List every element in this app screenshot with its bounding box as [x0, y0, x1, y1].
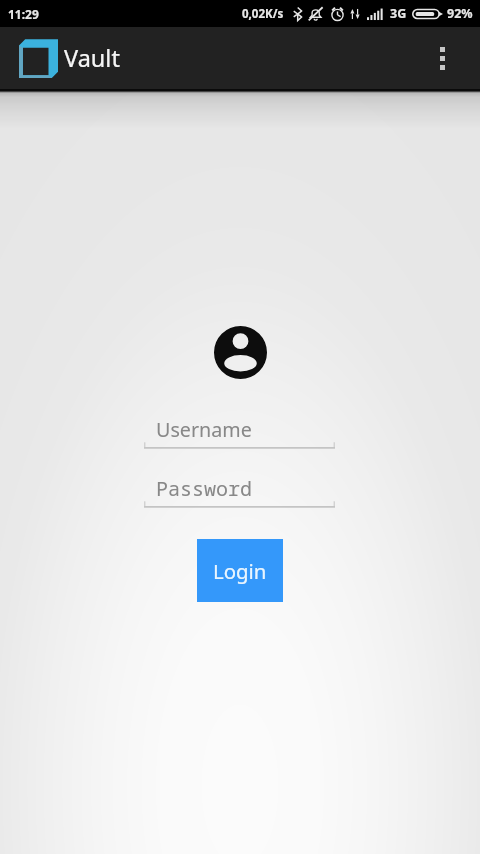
staticText: Login	[213, 557, 267, 585]
button[interactable]: Login	[197, 539, 283, 602]
staticText: Vault	[64, 42, 120, 74]
staticText: 3G	[390, 5, 407, 22]
staticText: 0,02K/s	[242, 6, 284, 22]
button[interactable]: More options	[418, 27, 466, 89]
staticText: 92%	[447, 5, 473, 22]
staticText: Password	[156, 475, 252, 502]
staticText: Username	[156, 416, 252, 443]
staticText: 11:29	[8, 6, 39, 22]
